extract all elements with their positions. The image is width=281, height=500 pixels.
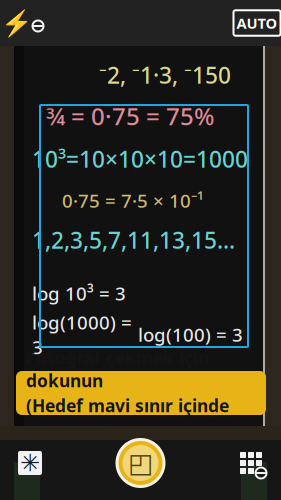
staticText: ⚡ — [0, 8, 32, 37]
staticText: log 10³ = 3 — [32, 281, 126, 306]
staticText: ¾ = 0·75 = 75% — [46, 100, 214, 132]
button[interactable]: Gallery — [4, 435, 56, 491]
staticText: ⁻2, ⁻1·3, ⁻150 — [99, 60, 231, 90]
staticText: log(1000) = 3 — [32, 310, 132, 359]
staticText: ✳ — [20, 449, 40, 477]
button[interactable]: Auto focus mode — [233, 5, 281, 41]
staticText: (Hedef mavi sınır içinde olmalıdır) — [26, 394, 229, 440]
staticText: 1,2,3,5,7,11,13,15... — [32, 225, 235, 255]
staticText: ◰ — [128, 448, 153, 478]
button[interactable]: Take photo — [112, 435, 168, 491]
button[interactable]: Flash off — [0, 5, 44, 41]
staticText: 0·75 = 7·5 × 10⁻¹ — [62, 188, 204, 213]
staticText: log(100) = 3 — [138, 322, 243, 347]
staticText: Fotoğraf çekmek için dokunun — [26, 346, 209, 392]
staticText: AUTO — [236, 13, 277, 33]
staticText: 10³=10×10×10=1000 — [32, 144, 248, 174]
button[interactable]: Grid off — [225, 435, 277, 491]
